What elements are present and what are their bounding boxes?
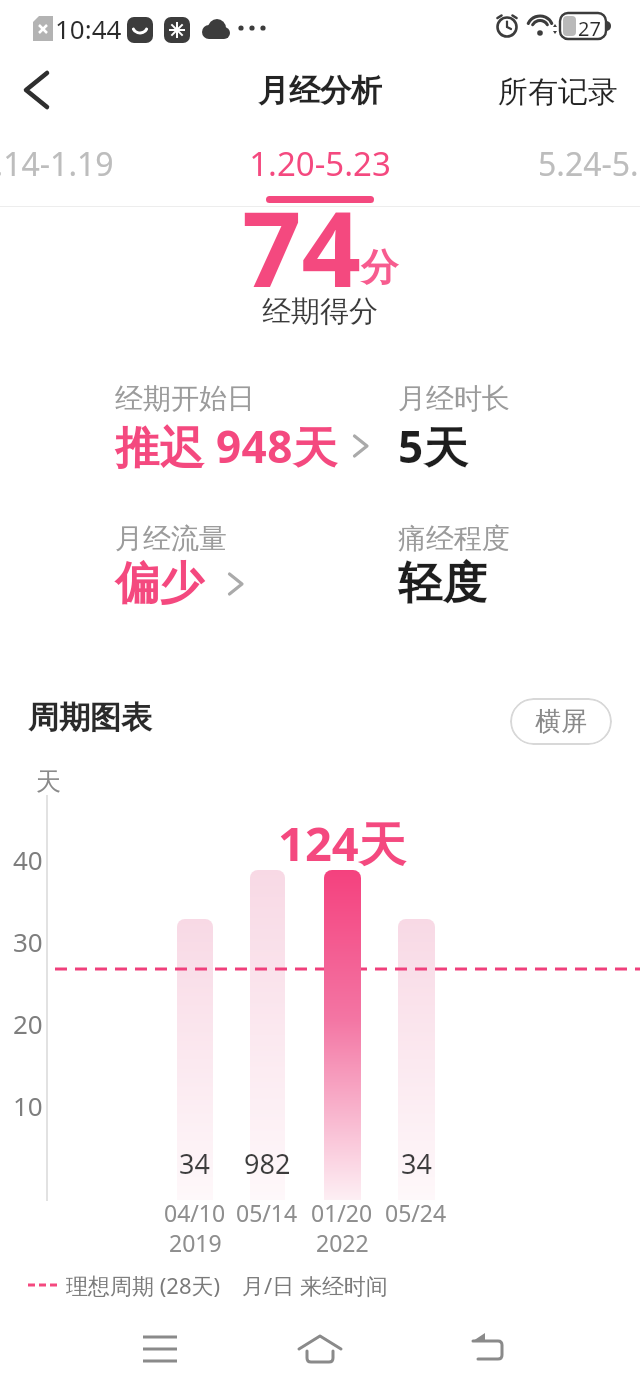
staticText: 分	[361, 244, 398, 291]
staticText: 横屏	[535, 705, 587, 738]
staticText: 124天	[278, 811, 406, 875]
staticText: 10:44	[55, 11, 122, 46]
staticText: 理想周期 (28天)	[66, 1270, 221, 1300]
button[interactable]	[16, 71, 60, 111]
staticText: 月经分析	[0, 71, 640, 110]
staticText: 轻度	[398, 556, 487, 611]
staticText: 痛经程度	[398, 521, 510, 556]
staticText: 982	[244, 1145, 291, 1182]
button[interactable]: 所有记录	[498, 73, 618, 111]
staticText: 5天	[398, 416, 469, 476]
staticText: 周期图表	[28, 698, 152, 737]
staticText: 月经流量	[115, 521, 227, 556]
staticText: 月/日 来经时间	[242, 1270, 388, 1300]
staticText: 34	[401, 1145, 432, 1182]
staticText: 经期得分	[0, 293, 640, 330]
staticText: 偏少	[115, 556, 204, 611]
staticText: 34	[179, 1145, 210, 1182]
button[interactable]: 月经流量	[115, 521, 244, 611]
button[interactable]: 12.14-1.19	[0, 142, 114, 186]
button[interactable]	[292, 1325, 348, 1375]
staticText: 74	[242, 176, 361, 318]
button[interactable]: 5.24-5.27	[538, 142, 640, 186]
button[interactable]: 月经时长	[398, 381, 510, 476]
staticText: 推迟 948天	[115, 416, 338, 476]
button[interactable]	[460, 1325, 516, 1375]
staticText: 04/10	[164, 1197, 226, 1228]
staticText: 30	[13, 924, 43, 959]
button[interactable]: 经期开始日	[115, 381, 369, 476]
staticText: 01/20	[311, 1197, 373, 1228]
staticText: 2022	[316, 1227, 369, 1258]
staticText: 天	[36, 766, 61, 797]
staticText: 40	[13, 842, 43, 877]
button[interactable]	[132, 1325, 188, 1375]
button[interactable]: 横屏	[510, 698, 612, 745]
staticText: 经期开始日	[115, 381, 255, 416]
staticText: 20	[13, 1006, 43, 1041]
button[interactable]: 1.20-5.23	[0, 141, 640, 186]
button[interactable]: 痛经程度	[398, 521, 510, 611]
staticText: 2019	[169, 1227, 222, 1258]
staticText: 月经时长	[398, 381, 510, 416]
staticText: 05/14	[236, 1197, 298, 1228]
staticText: 10	[13, 1088, 43, 1123]
staticText: 05/24	[385, 1197, 447, 1228]
staticText: 27	[578, 15, 601, 42]
